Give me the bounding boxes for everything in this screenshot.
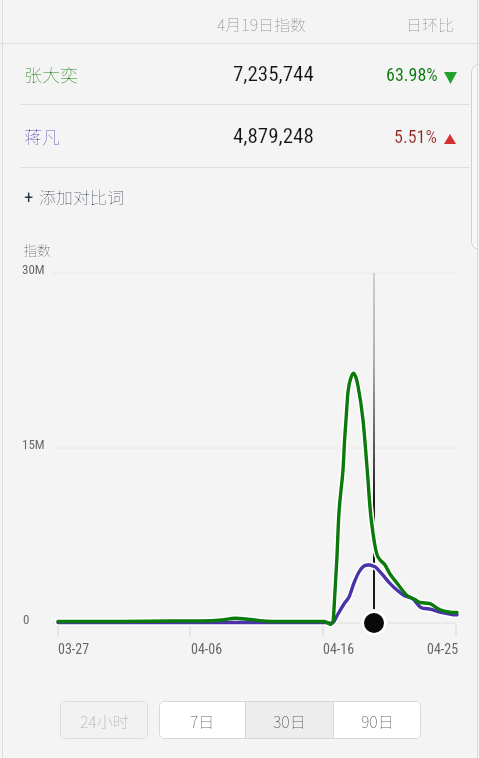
button[interactable]: 30日	[246, 701, 333, 739]
button[interactable]: 张大奕	[0, 44, 479, 104]
button[interactable]	[471, 64, 479, 250]
staticText: 蒋凡	[24, 123, 60, 149]
button[interactable]: 90日	[334, 701, 421, 739]
staticText: 90日	[361, 709, 394, 732]
staticText: 张大奕	[24, 61, 78, 87]
staticText: 4月19日指数	[217, 12, 307, 35]
staticText: 30日	[273, 709, 306, 732]
staticText: 添加对比词	[39, 184, 124, 209]
staticText: 指数	[23, 240, 51, 260]
staticText: 04-16	[323, 641, 355, 657]
staticText: 63.98%	[386, 64, 438, 85]
staticText: 30M	[22, 262, 45, 277]
staticText: 5.51%	[394, 126, 437, 147]
button[interactable]: 7日	[159, 701, 245, 739]
staticText: 03-27	[58, 641, 90, 657]
button[interactable]: 蒋凡	[0, 105, 479, 167]
staticText: 04-06	[191, 641, 223, 657]
staticText: +	[24, 186, 34, 208]
staticText: 0	[23, 612, 30, 627]
button[interactable]: 24小时	[60, 701, 148, 739]
staticText: 7日	[190, 709, 215, 732]
staticText: 7,235,744	[233, 62, 314, 87]
staticText: 04-25	[427, 641, 459, 657]
staticText: 24小时	[80, 709, 129, 732]
button[interactable]: +	[0, 168, 479, 224]
staticText: 日环比	[406, 12, 455, 35]
staticText: 15M	[22, 437, 45, 452]
staticText: 4,879,248	[233, 124, 314, 149]
